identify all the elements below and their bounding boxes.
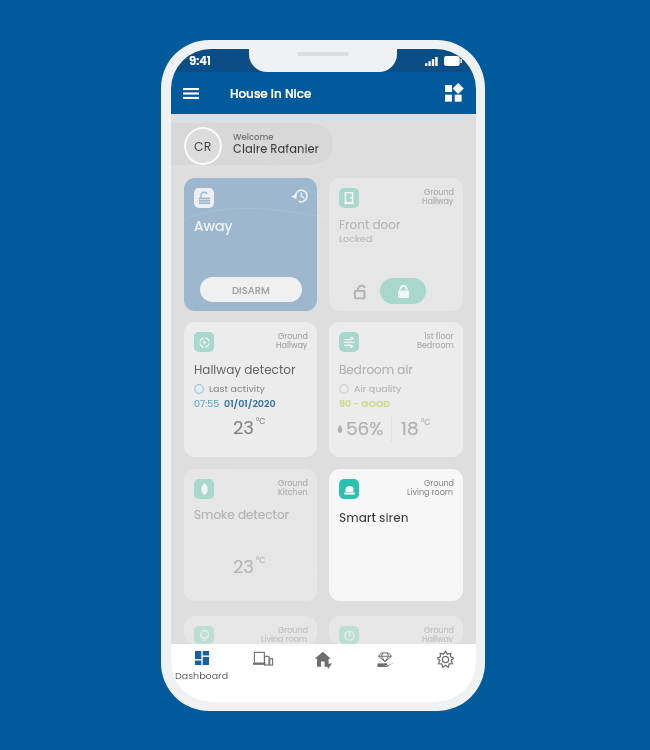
staticText: Ground bbox=[424, 187, 454, 198]
button[interactable]: History bbox=[184, 178, 317, 311]
staticText: °C bbox=[421, 417, 431, 428]
button[interactable] bbox=[171, 123, 333, 165]
staticText: 90 - GOOD bbox=[339, 397, 391, 410]
staticText: Hallway bbox=[276, 340, 308, 351]
staticText: Smoke detector bbox=[194, 506, 290, 523]
staticText: Ground bbox=[278, 331, 308, 342]
button[interactable]: Ground bbox=[329, 469, 463, 601]
button[interactable]: Home bbox=[293, 644, 354, 702]
staticText: Last activity bbox=[209, 382, 265, 395]
staticText: DISARM bbox=[232, 283, 270, 297]
button[interactable]: Settings bbox=[415, 644, 476, 702]
staticText: Ground bbox=[278, 625, 308, 636]
staticText: Locked bbox=[339, 232, 373, 245]
staticText: Bedroom bbox=[417, 340, 454, 351]
staticText: House in Nice bbox=[230, 85, 312, 102]
staticText: Bedroom air bbox=[339, 361, 413, 378]
button[interactable]: Ground bbox=[329, 178, 463, 311]
staticText: 23 bbox=[233, 554, 254, 579]
button[interactable]: 1st floor bbox=[329, 322, 463, 457]
staticText: Welcome bbox=[233, 131, 274, 143]
staticText: CR bbox=[194, 138, 212, 155]
staticText: 9:41 bbox=[189, 53, 211, 69]
staticText: Ground bbox=[424, 625, 454, 636]
button[interactable]: Unlock bbox=[349, 280, 371, 302]
button[interactable]: Lock bbox=[380, 278, 426, 304]
staticText: Kitchen bbox=[278, 487, 308, 498]
staticText: Smart siren bbox=[339, 509, 409, 526]
button[interactable]: Ground bbox=[184, 322, 317, 457]
staticText: °C bbox=[256, 555, 266, 566]
button[interactable]: Devices bbox=[232, 644, 293, 702]
staticText: Air quality bbox=[354, 382, 402, 395]
staticText: Front door bbox=[339, 216, 401, 233]
staticText: Ground bbox=[424, 478, 454, 489]
staticText: Living room bbox=[407, 487, 454, 498]
button[interactable]: Dashboard widgets bbox=[438, 78, 468, 108]
button[interactable]: Dashboard bbox=[171, 644, 232, 702]
button[interactable]: Ground bbox=[184, 469, 317, 601]
button[interactable]: Menu bbox=[175, 77, 207, 109]
staticText: Claire Rafanier bbox=[233, 141, 319, 157]
button[interactable]: DISARM bbox=[200, 277, 302, 302]
staticText: 18 bbox=[401, 416, 419, 442]
staticText: 23 bbox=[233, 415, 254, 440]
staticText: Hallway bbox=[422, 196, 454, 207]
staticText: Away bbox=[194, 216, 233, 236]
button[interactable]: Ground bbox=[329, 616, 463, 644]
staticText: Hallway detector bbox=[194, 361, 296, 378]
staticText: Ground bbox=[278, 478, 308, 489]
button[interactable]: Ground bbox=[184, 616, 317, 644]
staticText: 07:55 bbox=[194, 397, 220, 410]
staticText: °C bbox=[256, 416, 266, 427]
staticText: Hallway bbox=[422, 634, 454, 642]
button[interactable]: History bbox=[292, 188, 308, 204]
staticText: 56% bbox=[346, 416, 384, 442]
staticText: Living room bbox=[261, 634, 308, 642]
button[interactable]: Services bbox=[354, 644, 415, 702]
staticText: Dashboard bbox=[175, 669, 229, 682]
staticText: 1st floor bbox=[424, 331, 454, 342]
staticText: 01/01/2020 bbox=[224, 397, 276, 410]
